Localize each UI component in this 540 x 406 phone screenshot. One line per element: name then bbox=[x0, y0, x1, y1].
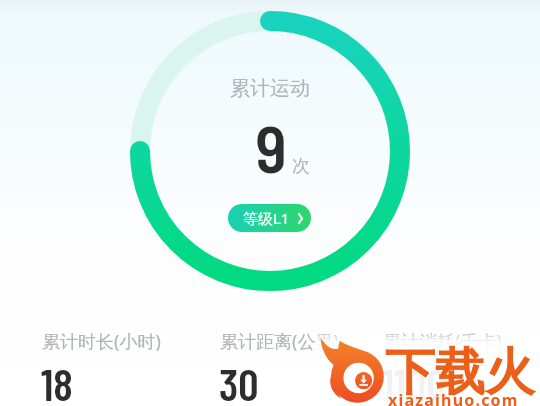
staticText: 累计时长(小时) bbox=[42, 329, 161, 354]
button[interactable]: 累计距离(公里) bbox=[210, 326, 360, 406]
staticText: 累计消耗(千卡) bbox=[383, 329, 502, 354]
staticText: xiazaihuo.com bbox=[388, 389, 519, 406]
button[interactable]: 累计消耗(千卡) bbox=[373, 326, 523, 406]
staticText: 30 bbox=[219, 356, 259, 406]
button[interactable]: 累计时长(小时) bbox=[32, 326, 182, 406]
staticText: 累计运动 bbox=[230, 76, 310, 101]
staticText: 等级L1 bbox=[243, 208, 290, 228]
staticText: 18 bbox=[41, 356, 73, 406]
staticText: 1100 bbox=[382, 356, 447, 406]
button[interactable]: 等级L1 bbox=[228, 204, 311, 232]
staticText: 9 bbox=[255, 107, 287, 186]
staticText: 累计距离(公里) bbox=[220, 329, 339, 354]
staticText: 下载火 bbox=[385, 341, 535, 404]
staticText: 次 bbox=[292, 155, 310, 178]
